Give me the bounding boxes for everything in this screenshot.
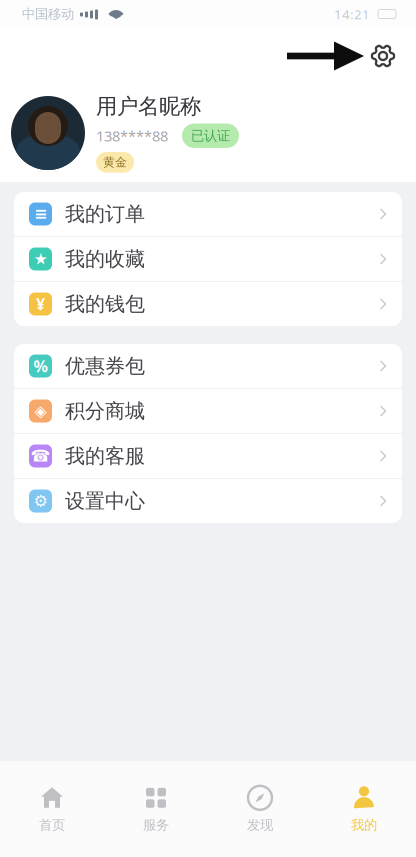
staticText: 黄金 [103, 155, 127, 170]
staticText: 我的订单 [65, 202, 145, 226]
staticText: 优惠券包 [65, 354, 145, 378]
staticText: 发现 [247, 817, 273, 833]
staticText: 我的收藏 [65, 247, 145, 271]
button[interactable]: 首页 [0, 778, 104, 840]
staticText: 14:21 [334, 5, 370, 23]
button[interactable]: 我的 [312, 778, 416, 840]
staticText: 已认证 [191, 127, 230, 144]
staticText: ¥ [36, 293, 45, 315]
button[interactable]: Settings [364, 28, 402, 84]
button[interactable]: 发现 [208, 778, 312, 840]
staticText: 用户名昵称 [96, 93, 201, 119]
button[interactable]: ☎ [14, 434, 402, 478]
staticText: 138****88 [96, 126, 168, 145]
button[interactable]: Profile photo [11, 96, 85, 170]
staticText: 我的钱包 [65, 292, 145, 316]
staticText: 设置中心 [65, 489, 145, 513]
staticText: ☎ [30, 447, 50, 465]
button[interactable]: % [14, 344, 402, 388]
button[interactable]: ¥ [14, 282, 402, 326]
button[interactable]: ≡ [14, 192, 402, 236]
staticText: 首页 [39, 817, 65, 833]
staticText: ◈ [34, 402, 46, 420]
button[interactable]: ★ [14, 237, 402, 281]
staticText: 我的 [351, 817, 377, 833]
staticText: 服务 [143, 817, 169, 833]
button[interactable]: ◈ [14, 389, 402, 433]
staticText: ⚙ [33, 492, 47, 510]
staticText: 积分商城 [65, 399, 145, 423]
button[interactable]: 服务 [104, 778, 208, 840]
staticText: % [33, 355, 47, 377]
staticText: 中国移动 [22, 6, 74, 22]
staticText: ★ [33, 250, 47, 268]
staticText: 我的客服 [65, 444, 145, 468]
staticText: ≡ [34, 205, 47, 223]
button[interactable]: ⚙ [14, 479, 402, 523]
